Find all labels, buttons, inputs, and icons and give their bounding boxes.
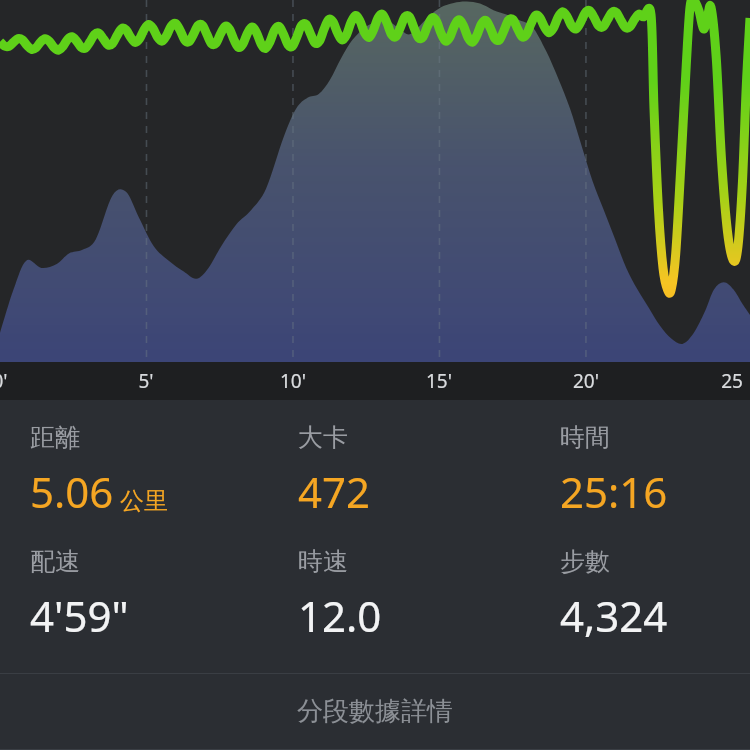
button[interactable]: 步數: [560, 546, 750, 644]
staticText: 25:16: [560, 463, 668, 520]
button[interactable]: 大卡: [298, 422, 498, 520]
staticText: 5': [116, 368, 176, 394]
staticText: 15': [409, 368, 469, 394]
staticText: 0': [0, 368, 30, 394]
button[interactable]: 配速: [30, 546, 230, 644]
staticText: 配速: [30, 546, 80, 577]
staticText: 12.0: [298, 587, 382, 644]
staticText: 4'59": [30, 587, 129, 644]
staticText: 時間: [560, 422, 610, 453]
staticText: 5.06: [30, 463, 114, 520]
staticText: 大卡: [298, 422, 348, 453]
staticText: 10': [263, 368, 323, 394]
staticText: 分段數據詳情: [297, 695, 453, 728]
staticText: 距離: [30, 422, 80, 453]
staticText: 25: [702, 368, 750, 394]
button[interactable]: 時間: [560, 422, 750, 520]
staticText: 4,324: [560, 587, 668, 644]
staticText: 20': [556, 368, 616, 394]
staticText: 步數: [560, 546, 610, 577]
button[interactable]: 時速: [298, 546, 498, 644]
staticText: 472: [298, 463, 371, 520]
staticText: 時速: [298, 546, 348, 577]
staticText: 公里: [120, 486, 168, 516]
button[interactable]: 距離: [30, 422, 230, 520]
button[interactable]: 分段數據詳情: [0, 674, 750, 749]
